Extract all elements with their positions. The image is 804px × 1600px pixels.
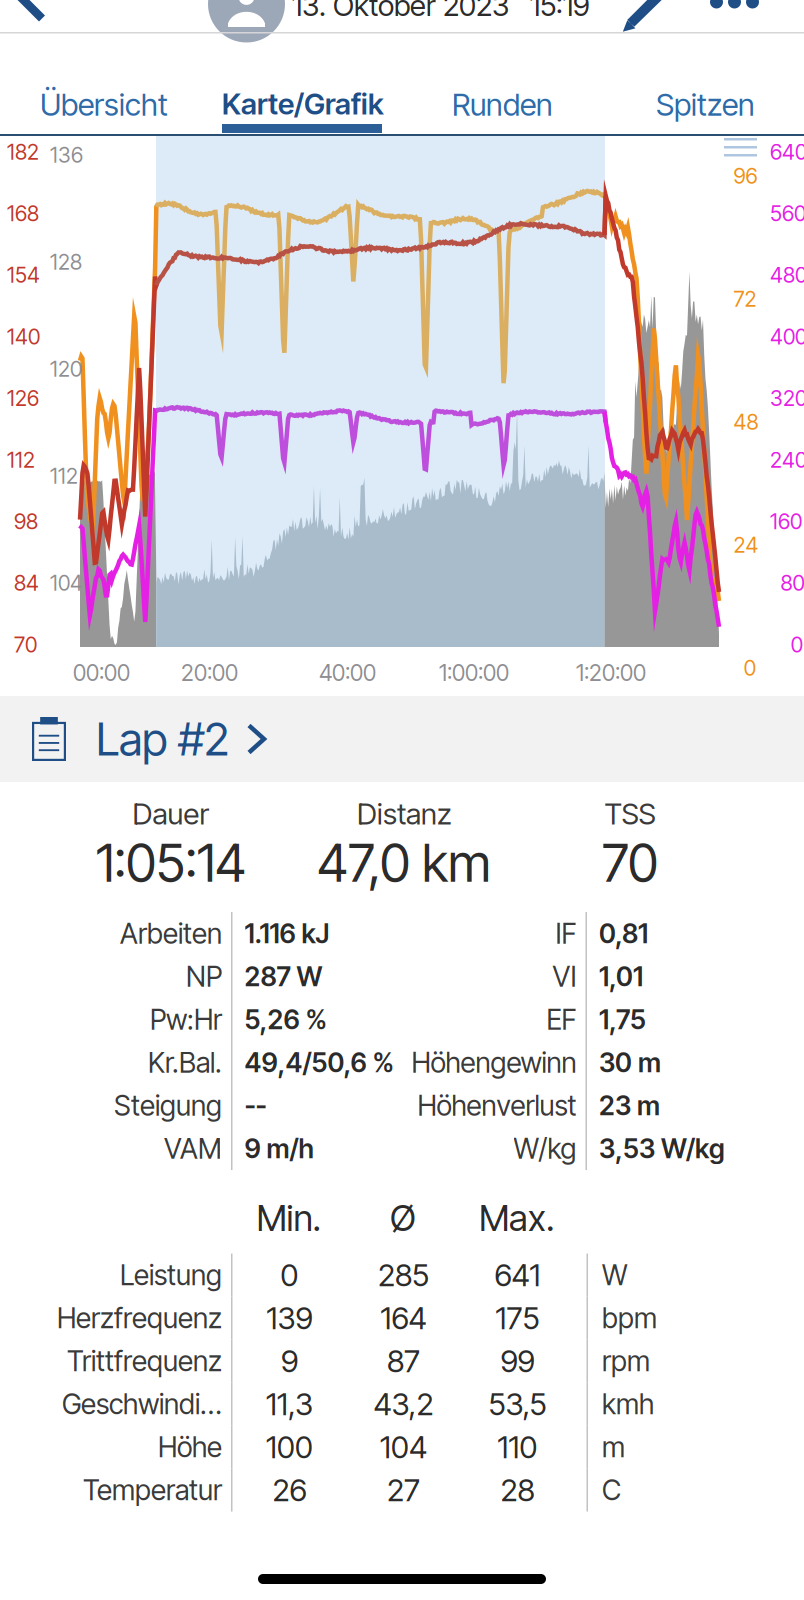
staticText: Trittfrequenz bbox=[67, 1344, 222, 1378]
staticText: 40:00 bbox=[319, 659, 376, 686]
staticText: 1,01 bbox=[599, 960, 643, 993]
staticText: 140 bbox=[7, 324, 40, 350]
staticText: 320 bbox=[770, 385, 804, 411]
staticText: 13. Oktober 2023 15:19 bbox=[292, 0, 590, 23]
staticText: 96 bbox=[733, 163, 757, 189]
staticText: Höhe bbox=[158, 1430, 222, 1464]
button[interactable]: Edit bbox=[627, 0, 669, 27]
staticText: 139 bbox=[266, 1299, 312, 1337]
staticText: Temperatur bbox=[83, 1473, 222, 1507]
staticText: 9 m/h bbox=[244, 1132, 313, 1165]
staticText: 285 bbox=[378, 1256, 429, 1294]
staticText: Herzfrequenz bbox=[57, 1301, 222, 1335]
button[interactable]: Karte/Grafik bbox=[208, 62, 398, 145]
button[interactable]: More bbox=[710, 0, 759, 8]
staticText: 53,5 bbox=[488, 1385, 546, 1423]
staticText: 126 bbox=[7, 385, 39, 411]
staticText: Distanz bbox=[357, 796, 451, 831]
staticText: 27 bbox=[387, 1471, 420, 1509]
staticText: IF bbox=[555, 917, 576, 950]
staticText: 20:00 bbox=[181, 659, 238, 686]
staticText: 1:20:00 bbox=[576, 659, 646, 686]
staticText: 400 bbox=[770, 324, 804, 350]
staticText: Kr.Bal. bbox=[148, 1046, 222, 1079]
staticText: 87 bbox=[387, 1342, 420, 1380]
staticText: 80 bbox=[780, 570, 804, 596]
staticText: 0 bbox=[280, 1256, 298, 1294]
staticText: Steigung bbox=[114, 1089, 222, 1122]
staticText: 1:05:14 bbox=[96, 831, 246, 894]
staticText: 28 bbox=[500, 1471, 534, 1509]
staticText: 00:00 bbox=[73, 659, 130, 686]
staticText: 154 bbox=[7, 262, 40, 288]
staticText: Max. bbox=[479, 1196, 555, 1240]
staticText: Lap #2 bbox=[96, 712, 229, 766]
staticText: 9 bbox=[281, 1342, 298, 1380]
staticText: 160 bbox=[770, 509, 802, 534]
staticText: 26 bbox=[272, 1471, 306, 1509]
staticText: 1,75 bbox=[599, 1003, 646, 1036]
staticText: 110 bbox=[497, 1428, 537, 1466]
staticText: 120 bbox=[50, 356, 82, 382]
button[interactable]: Lap #2 bbox=[0, 696, 804, 782]
staticText: m bbox=[602, 1430, 625, 1464]
staticText: 98 bbox=[14, 509, 38, 534]
staticText: 168 bbox=[7, 201, 39, 226]
staticText: 48 bbox=[733, 409, 758, 435]
staticText: 104 bbox=[380, 1428, 427, 1466]
staticText: Runden bbox=[452, 86, 553, 123]
staticText: Pw:Hr bbox=[150, 1003, 222, 1036]
staticText: 43,2 bbox=[373, 1385, 433, 1423]
staticText: 70 bbox=[602, 831, 658, 894]
staticText: 72 bbox=[733, 286, 756, 312]
button[interactable]: Übersicht bbox=[26, 62, 182, 147]
staticText: 136 bbox=[50, 142, 83, 168]
staticText: 480 bbox=[770, 262, 804, 288]
staticText: rpm bbox=[602, 1344, 650, 1378]
staticText: 1.116 kJ bbox=[244, 917, 329, 950]
button[interactable]: Runden bbox=[438, 62, 567, 147]
staticText: 240 bbox=[770, 447, 804, 473]
staticText: Karte/Grafik bbox=[222, 86, 384, 121]
staticText: Übersicht bbox=[40, 86, 168, 123]
staticText: 0 bbox=[744, 655, 756, 681]
staticText: kmh bbox=[602, 1387, 654, 1421]
staticText: W bbox=[602, 1258, 627, 1292]
button[interactable]: Spitzen bbox=[642, 62, 769, 147]
staticText: Höhengewinn bbox=[411, 1046, 576, 1079]
staticText: 84 bbox=[14, 570, 39, 596]
staticText: 99 bbox=[500, 1342, 534, 1380]
staticText: Spitzen bbox=[656, 86, 755, 123]
staticText: 640 bbox=[770, 139, 804, 165]
staticText: 0,81 bbox=[599, 917, 648, 950]
staticText: 30 m bbox=[599, 1046, 661, 1079]
staticText: 182 bbox=[7, 139, 39, 165]
staticText: 112 bbox=[50, 463, 78, 489]
staticText: 0 bbox=[791, 632, 803, 658]
staticText: 5,26 % bbox=[244, 1003, 326, 1036]
staticText: 560 bbox=[770, 201, 804, 226]
staticText: 175 bbox=[495, 1299, 539, 1337]
button[interactable]: Back bbox=[0, 0, 64, 18]
staticText: Geschwindi… bbox=[62, 1387, 222, 1421]
staticText: NP bbox=[186, 960, 222, 993]
staticText: VAM bbox=[164, 1132, 222, 1165]
staticText: 24 bbox=[733, 532, 758, 558]
staticText: 11,3 bbox=[266, 1385, 313, 1423]
staticText: 70 bbox=[14, 632, 37, 658]
staticText: EF bbox=[546, 1003, 576, 1036]
staticText: C bbox=[602, 1473, 621, 1507]
staticText: Höhenverlust bbox=[417, 1089, 576, 1122]
staticText: 49,4/50,6 % bbox=[244, 1046, 393, 1079]
staticText: Ø bbox=[390, 1196, 416, 1240]
staticText: 47,0 km bbox=[317, 831, 491, 894]
staticText: 23 m bbox=[599, 1089, 660, 1122]
staticText: Min. bbox=[256, 1196, 321, 1240]
staticText: Leistung bbox=[120, 1258, 222, 1292]
staticText: 287 W bbox=[244, 960, 322, 993]
staticText: 1:00:00 bbox=[439, 659, 509, 686]
staticText: 100 bbox=[266, 1428, 313, 1466]
staticText: TSS bbox=[604, 796, 655, 831]
staticText: bpm bbox=[602, 1301, 657, 1335]
staticText: Dauer bbox=[132, 796, 209, 831]
